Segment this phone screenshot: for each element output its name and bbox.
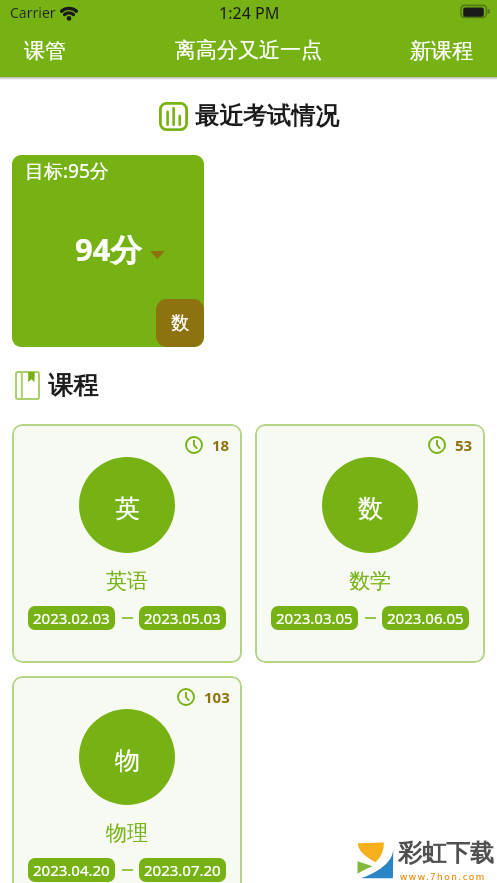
button[interactable]: 课管	[10, 34, 80, 68]
other: Wi-Fi	[58, 2, 80, 22]
staticText: 数	[171, 312, 189, 335]
staticText: 2023.02.03	[33, 608, 110, 628]
staticText: 18	[212, 435, 230, 455]
staticText: 数学	[349, 568, 391, 594]
staticText: 53	[455, 435, 473, 455]
staticText: 2023.03.05	[276, 608, 353, 628]
staticText: 94分	[75, 228, 142, 270]
staticText: 1:24 PM	[219, 2, 280, 24]
staticText: 2023.07.20	[144, 860, 221, 880]
staticText: 103	[204, 687, 230, 707]
button[interactable]: 53	[255, 424, 485, 663]
staticText: 目标:95分	[25, 158, 109, 184]
staticText: 2023.04.20	[33, 860, 110, 880]
staticText: 新课程	[410, 38, 473, 64]
staticText: 数	[358, 493, 383, 524]
staticText: 英	[115, 493, 140, 524]
staticText: 英语	[106, 568, 148, 594]
button[interactable]: 103	[12, 676, 242, 883]
staticText: 最近考试情况	[195, 101, 339, 131]
button[interactable]: 数	[156, 299, 204, 347]
staticText: www.7hon.com	[400, 870, 486, 882]
staticText: 离高分又近一点	[175, 37, 322, 63]
staticText: 彩虹下载	[398, 838, 494, 868]
staticText: Carrier	[10, 3, 56, 22]
button[interactable]: 目标:95分	[12, 155, 204, 347]
staticText: 物理	[106, 820, 148, 846]
staticText: 2023.05.03	[144, 608, 221, 628]
staticText: 2023.06.05	[387, 608, 464, 628]
other: Battery full	[460, 4, 490, 19]
staticText: 课程	[48, 370, 98, 401]
staticText: 物	[115, 745, 140, 776]
button[interactable]: 新课程	[396, 34, 487, 68]
button[interactable]: 18	[12, 424, 242, 663]
staticText: 课管	[24, 38, 66, 64]
